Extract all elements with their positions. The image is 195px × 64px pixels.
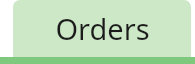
button[interactable]: Orders (13, 0, 191, 57)
staticText: Orders (55, 9, 150, 48)
